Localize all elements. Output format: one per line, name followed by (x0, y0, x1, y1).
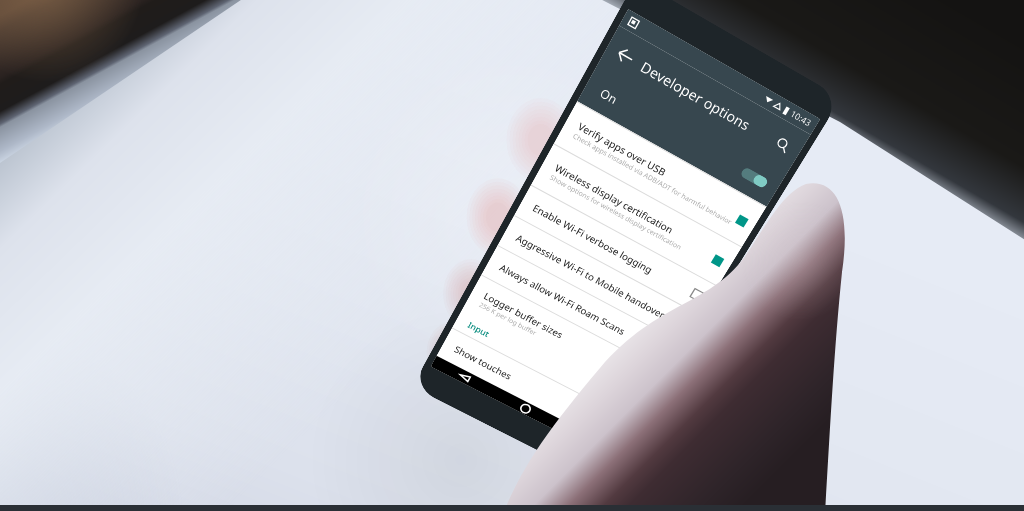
staticText: Verify apps over USB (576, 119, 669, 179)
staticText: Input (466, 319, 492, 339)
button[interactable]: Enable Wi-Fi verbose logging (514, 185, 718, 315)
button[interactable]: Home (492, 387, 558, 429)
staticText: Always allow Wi-Fi Roam Scans (497, 261, 628, 338)
button[interactable]: Back (577, 25, 811, 207)
button[interactable]: Wireless display certification (531, 143, 742, 286)
staticText: 10:43 (788, 108, 813, 129)
staticText: Enable Wi-Fi verbose logging (530, 201, 655, 276)
button[interactable]: Back (431, 356, 498, 398)
button[interactable]: Always allow Wi-Fi Roam Scans (481, 245, 683, 371)
button[interactable]: Search (756, 119, 809, 170)
staticText: Developer options (637, 57, 754, 135)
button[interactable]: Show touches (437, 327, 635, 449)
staticText: 256 K per log buffer (477, 301, 538, 338)
button[interactable]: On (577, 65, 787, 207)
staticText: On (597, 84, 621, 107)
staticText: Wireless display certification (553, 161, 676, 237)
staticText: Check apps installed via ADB/ADT for har… (571, 131, 734, 227)
button[interactable]: Verify apps over USB (554, 101, 767, 247)
staticText: Aggressive Wi-Fi to Mobile handover (514, 231, 667, 321)
staticText: Show touches (452, 343, 515, 382)
button[interactable]: Back (598, 28, 652, 82)
button[interactable]: Aggressive Wi-Fi to Mobile handover (498, 215, 700, 343)
button[interactable]: Recents (552, 418, 618, 459)
staticText: Show options for wireless display certif… (548, 173, 683, 252)
button[interactable]: Logger buffer sizes (462, 274, 665, 405)
staticText: Logger buffer sizes (482, 289, 566, 341)
